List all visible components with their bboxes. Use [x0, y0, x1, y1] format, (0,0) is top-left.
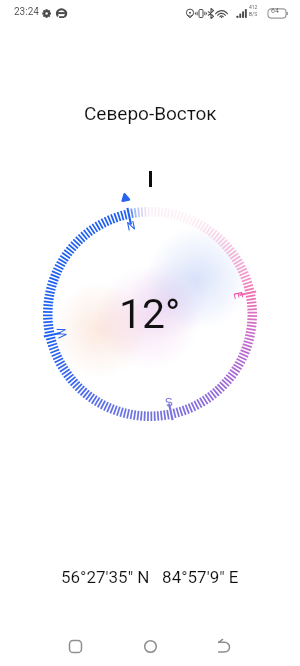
staticText: 23:24 — [14, 6, 39, 18]
staticText: B/S — [249, 11, 258, 17]
staticText: Северо-Восток — [84, 102, 217, 124]
staticText: 12° — [119, 290, 181, 338]
button[interactable]: Home — [128, 624, 172, 666]
button[interactable]: Back — [202, 624, 246, 666]
staticText: 412 — [249, 4, 258, 10]
staticText: 56°27'35" N 84°57'9" E — [61, 567, 239, 587]
staticText: 64 — [271, 7, 279, 15]
button[interactable]: Recent apps — [53, 624, 97, 666]
